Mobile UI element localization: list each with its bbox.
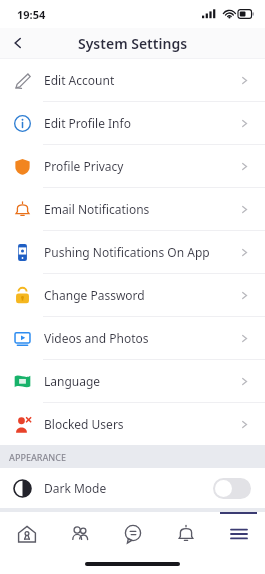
staticText: Change Password (44, 287, 240, 303)
staticText: Videos and Photos (44, 330, 240, 346)
button[interactable]: Home (0, 514, 53, 554)
staticText: Language (44, 373, 240, 389)
staticText: Dark Mode (44, 480, 213, 496)
button[interactable]: Blocked Users (0, 403, 265, 445)
button[interactable]: Dark Mode toggle (213, 478, 251, 499)
button[interactable]: Notifications (159, 514, 212, 554)
button[interactable]: Messages (106, 514, 159, 554)
button[interactable]: Pushing Notifications On App (0, 231, 265, 273)
button[interactable]: Email Notifications (0, 188, 265, 230)
button[interactable]: Back (0, 28, 36, 58)
staticText: Edit Profile Info (44, 115, 240, 131)
button[interactable]: Change Password (0, 274, 265, 316)
staticText: Blocked Users (44, 416, 240, 432)
button[interactable]: Edit Account (0, 59, 265, 101)
button[interactable]: Dark Mode (0, 468, 265, 508)
button[interactable]: Profile Privacy (0, 145, 265, 187)
button[interactable]: Edit Profile Info (0, 102, 265, 144)
staticText: Edit Account (44, 72, 240, 88)
button[interactable]: Menu (212, 514, 265, 554)
button[interactable]: People (53, 514, 106, 554)
button[interactable]: Videos and Photos (0, 317, 265, 359)
staticText: Pushing Notifications On App (44, 244, 240, 260)
staticText: Profile Privacy (44, 158, 240, 174)
staticText: System Settings (78, 34, 188, 53)
staticText: APPEARANCE (9, 451, 67, 463)
staticText: Email Notifications (44, 201, 240, 217)
staticText: 19:54 (17, 7, 46, 22)
button[interactable]: Language (0, 360, 265, 402)
